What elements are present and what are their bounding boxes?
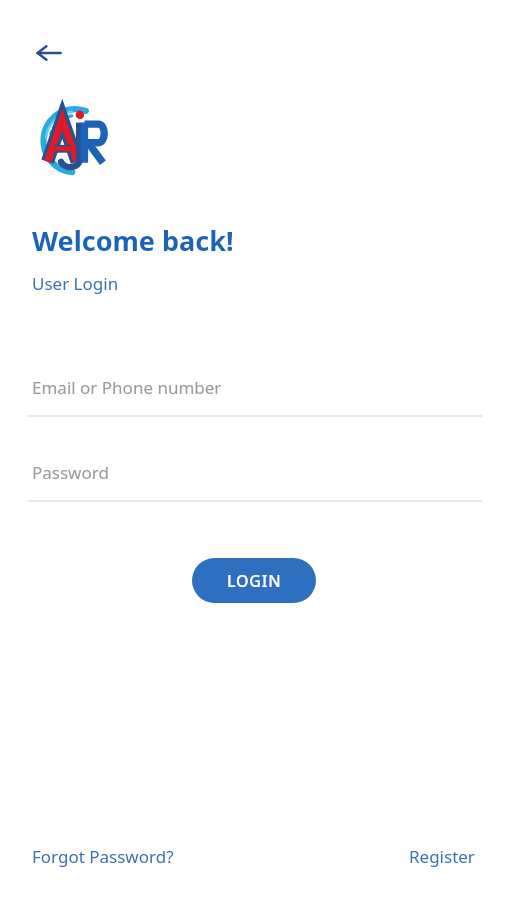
button[interactable]: Back [26, 30, 72, 76]
button[interactable]: Email or Phone number [0, 370, 507, 417]
staticText: Email or Phone number [32, 376, 222, 399]
staticText: Register [409, 845, 475, 868]
button[interactable]: Password [0, 455, 507, 502]
staticText: Forgot Password? [32, 845, 174, 868]
button[interactable]: LOGIN [192, 558, 316, 603]
staticText: User Login [32, 272, 119, 295]
button[interactable]: Register [403, 839, 481, 874]
other: AJR logo [34, 98, 116, 180]
staticText: Welcome back! [32, 222, 234, 259]
staticText: Password [32, 461, 109, 484]
staticText: LOGIN [227, 570, 282, 592]
button[interactable]: Forgot Password? [26, 839, 180, 874]
